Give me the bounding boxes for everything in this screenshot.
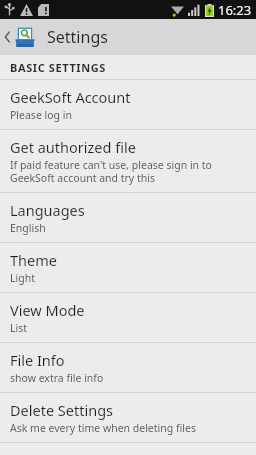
staticText: Theme: [10, 250, 57, 270]
button[interactable]: GeekSoft Account: [0, 80, 256, 129]
staticText: Light: [10, 271, 35, 285]
staticText: BASIC SETTINGS: [10, 60, 106, 75]
staticText: Get authorized file: [10, 137, 136, 157]
button[interactable]: Back: [0, 22, 38, 52]
button[interactable]: View Mode: [0, 293, 256, 342]
staticText: show extra file info: [10, 371, 104, 385]
staticText: Languages: [10, 200, 85, 220]
staticText: 16:23: [218, 1, 252, 19]
staticText: View Mode: [10, 300, 85, 320]
staticText: List: [10, 321, 28, 335]
button[interactable]: Get authorized file: [0, 130, 256, 192]
staticText: Settings: [47, 26, 108, 48]
button[interactable]: Delete Settings: [0, 393, 256, 442]
button[interactable]: File Info: [0, 343, 256, 392]
staticText: File Info: [10, 350, 65, 370]
staticText: Ask me every time when deleting files: [10, 421, 196, 435]
button[interactable]: Theme: [0, 243, 256, 292]
staticText: Please log in: [10, 108, 73, 122]
staticText: Delete Settings: [10, 400, 114, 420]
staticText: If paid feature can't use, please sign i…: [10, 158, 246, 185]
staticText: English: [10, 221, 46, 235]
button[interactable]: Languages: [0, 193, 256, 242]
staticText: GeekSoft Account: [10, 87, 131, 107]
